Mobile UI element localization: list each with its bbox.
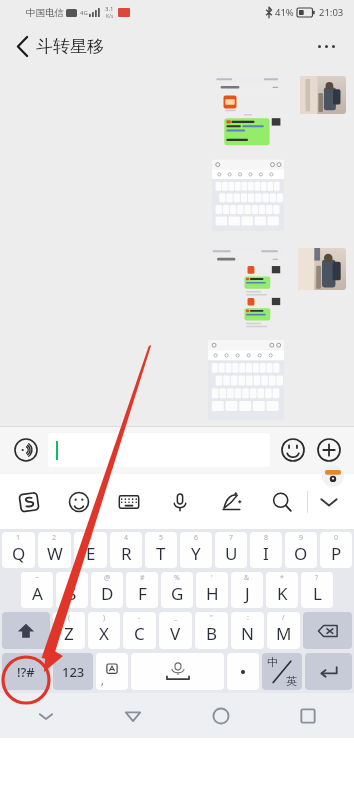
button[interactable]: 1 [2,532,35,568]
button[interactable]: ~ [21,572,53,608]
button[interactable]: 6 [180,532,212,568]
button[interactable] [48,433,270,467]
button[interactable]: 7 [215,532,247,568]
button[interactable]: Hide [22,693,70,738]
staticText: 2 [52,533,57,543]
staticText: 0 [334,533,339,543]
staticText: 8 [264,533,269,543]
staticText: 3 [88,533,93,543]
staticText: X [99,622,109,645]
button[interactable]: Period [227,653,259,690]
staticText: 1 [16,533,21,543]
staticText: 41% [275,6,294,19]
staticText: F [138,582,147,605]
staticText: 5 [159,533,164,543]
button[interactable]: Voice [154,474,205,529]
button[interactable]: Switch language [262,653,302,690]
button[interactable]: 8 [250,532,282,568]
staticText: K/s [106,13,114,20]
staticText: K [277,582,288,605]
staticText: N [241,622,254,645]
staticText: !?# [17,663,35,681]
button[interactable]: Search [256,474,307,529]
button[interactable]: & [231,572,263,608]
staticText: 3.1 [105,5,114,13]
button[interactable]: Emoji [276,433,310,467]
button[interactable]: - [123,612,156,649]
button[interactable] [300,76,346,114]
staticText: 7 [229,533,234,543]
button[interactable]: Back [4,28,40,64]
button[interactable]: Symbols [96,653,128,690]
button[interactable]: Home [197,693,245,738]
button[interactable]: Backspace [303,612,352,649]
button[interactable]: % [161,572,193,608]
button[interactable]: _ [159,612,192,649]
staticText: L [313,582,322,605]
staticText: ~ [35,573,40,583]
staticText: P [331,542,342,565]
button[interactable]: Back [109,693,157,738]
button[interactable]: 0 [320,532,352,568]
button[interactable]: 3 [74,532,107,568]
staticText: C [134,622,145,645]
staticText: ) [103,613,106,623]
button[interactable]: Input method [4,474,54,529]
staticText: I [263,542,269,565]
staticText: S [67,582,77,605]
staticText: U [225,542,238,565]
button[interactable]: Space [131,653,224,690]
staticText: ' [211,573,213,583]
staticText: 中国电信 [26,7,64,19]
staticText: # [140,573,145,583]
button[interactable]: 2 [38,532,71,568]
staticText: % [174,573,180,583]
button[interactable]: @ [91,572,123,608]
button[interactable]: 4 [110,532,142,568]
button[interactable]: Voice input [8,432,44,468]
button[interactable]: More options [306,26,346,66]
button[interactable]: : [231,612,264,649]
staticText: W [47,542,63,565]
button[interactable]: Handwriting [205,474,256,529]
button[interactable] [208,248,284,420]
button[interactable]: Recents [284,693,332,738]
staticText: : [247,613,249,623]
staticText: & [244,573,250,583]
staticText: 6 [194,533,199,543]
button[interactable]: / [267,612,300,649]
staticText: Q [12,542,26,565]
staticText: O [294,542,308,565]
button[interactable]: 123 [53,653,93,690]
button[interactable]: !?# [2,653,50,690]
button[interactable]: ? [301,572,333,608]
staticText: Z [64,622,74,645]
button[interactable]: More [312,433,346,467]
button[interactable]: ! [56,572,88,608]
button[interactable]: # [126,572,158,608]
button[interactable]: ) [88,612,120,649]
button[interactable]: Enter [305,653,352,690]
staticText: A [32,582,43,605]
button[interactable]: ' [196,572,228,608]
staticText: * [280,573,284,583]
button[interactable]: Collapse keyboard [308,474,350,529]
staticText: 123 [62,663,85,681]
staticText: J [245,582,250,605]
button[interactable]: Sticker [322,465,344,487]
staticText: _ [174,613,178,623]
staticText: M [276,622,292,645]
button[interactable] [212,76,284,231]
button[interactable]: Shift [2,612,50,649]
button[interactable]: 5 [145,532,177,568]
button[interactable]: 9 [285,532,317,568]
button[interactable]: Emoji [54,474,104,529]
button[interactable]: Keyboard layout [104,474,154,529]
staticText: G [171,582,184,605]
button[interactable]: ( [53,612,85,649]
staticText: V [170,622,181,645]
button[interactable]: * [266,572,298,608]
button[interactable]: " [195,612,228,649]
staticText: ( [68,613,71,623]
button[interactable] [298,248,346,290]
